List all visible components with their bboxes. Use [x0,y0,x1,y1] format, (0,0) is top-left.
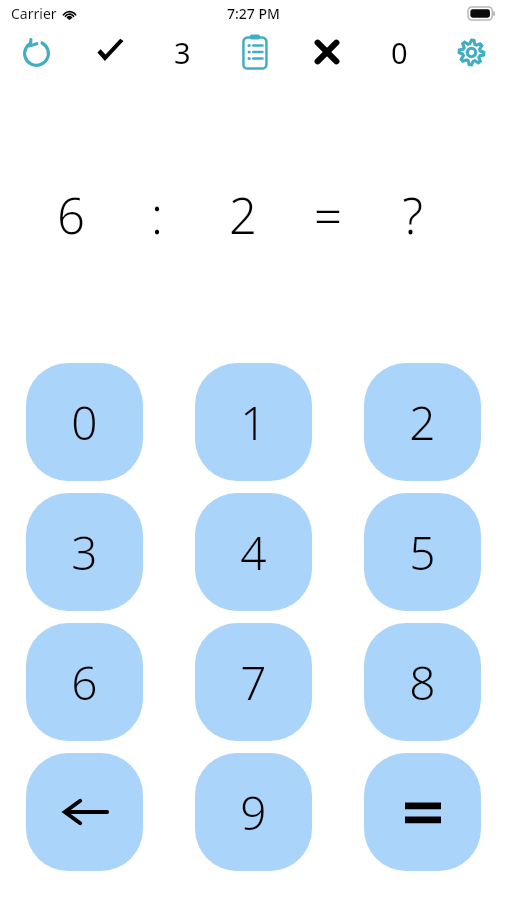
button[interactable]: 0 [26,363,143,481]
staticText: 2 [409,391,436,454]
staticText: 3 [71,521,98,584]
staticText: 0 [391,33,408,72]
button[interactable]: Settings [435,26,507,78]
staticText: 6 [57,182,85,248]
staticText: 7 [240,651,267,714]
staticText: 5 [409,521,436,584]
button[interactable]: Backspace [26,753,143,871]
staticText: : [151,182,163,248]
button[interactable]: 8 [364,623,481,741]
button[interactable] [364,753,481,871]
staticText: 9 [240,781,267,844]
staticText: 4 [240,521,267,584]
button[interactable]: 6 [26,623,143,741]
button[interactable]: Correct answers [73,26,146,78]
button[interactable]: 3 [26,493,143,611]
button[interactable]: 7 [195,623,312,741]
staticText: 2 [229,182,257,248]
staticText: = [314,182,342,248]
staticText: 7:27 PM [227,4,280,23]
staticText: 0 [71,391,98,454]
button[interactable]: Reset [0,26,73,78]
staticText: 3 [174,33,191,72]
staticText: Carrier [11,4,57,23]
button[interactable]: 5 [364,493,481,611]
staticText: 1 [240,391,267,454]
button[interactable]: 4 [195,493,312,611]
button[interactable]: History [219,26,291,78]
staticText: ? [402,182,423,248]
staticText: 8 [409,651,436,714]
button[interactable]: 1 [195,363,312,481]
button[interactable]: 9 [195,753,312,871]
staticText: 6 [71,651,98,714]
button[interactable]: Wrong answers [291,26,363,78]
button[interactable]: 0 [363,26,435,78]
button[interactable]: 3 [146,26,219,78]
button[interactable]: 2 [364,363,481,481]
